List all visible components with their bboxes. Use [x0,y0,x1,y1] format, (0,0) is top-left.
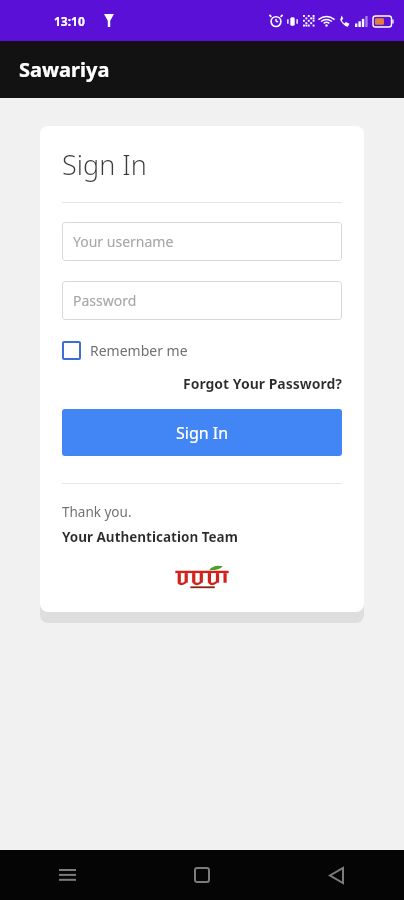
button[interactable]: Your username [62,222,342,261]
staticText: Your Authentication Team [62,528,238,546]
button[interactable]: Remember me [62,339,188,362]
staticText: Password [73,291,137,310]
button[interactable]: Back [269,850,404,900]
other: Sawariya logo [173,564,231,590]
staticText: Remember me [90,341,188,360]
button[interactable]: Recent apps [0,850,134,900]
button[interactable]: Forgot Your Password? [182,374,342,393]
staticText: Your username [73,232,174,251]
staticText: Sign In [62,146,147,183]
staticText: 13:10 [54,13,85,29]
button[interactable]: Sign In [62,409,342,456]
button[interactable]: Password [62,281,342,320]
staticText: Sawariya [19,56,110,83]
staticText: Sign In [176,422,229,444]
staticText: Thank you. [62,503,132,521]
button[interactable]: Home [134,850,269,900]
